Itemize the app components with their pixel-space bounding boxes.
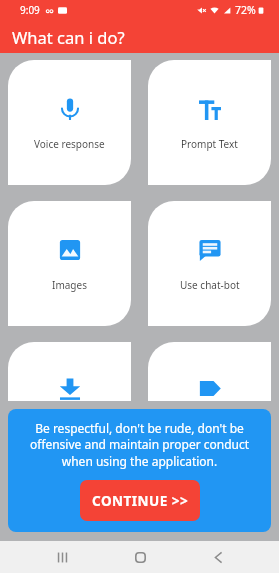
button[interactable]: Recent apps	[40, 541, 84, 573]
staticText: Be respectful, don't be rude, don't be o…	[24, 420, 255, 470]
staticText: 72%	[235, 3, 256, 17]
button[interactable]: Use chat-bot	[148, 201, 271, 326]
button[interactable]: Images	[8, 201, 131, 326]
button[interactable]: CONTINUE >>	[80, 480, 200, 521]
staticText: CONTINUE >>	[92, 492, 189, 510]
staticText: 9:09	[20, 3, 40, 17]
staticText: What can i do?	[12, 26, 125, 48]
button[interactable]: Download	[8, 342, 131, 401]
button[interactable]: Prompt Text	[148, 60, 271, 185]
button[interactable]: What can i do?	[0, 20, 279, 53]
button[interactable]: Back	[196, 541, 240, 573]
staticText: Voice response	[34, 137, 105, 151]
button[interactable]: Home	[118, 541, 162, 573]
staticText: Images	[52, 278, 87, 292]
button[interactable]: Tags	[148, 342, 271, 401]
staticText: Prompt Text	[181, 137, 238, 151]
button[interactable]: Voice response	[8, 60, 131, 185]
staticText: Use chat-bot	[180, 278, 240, 292]
